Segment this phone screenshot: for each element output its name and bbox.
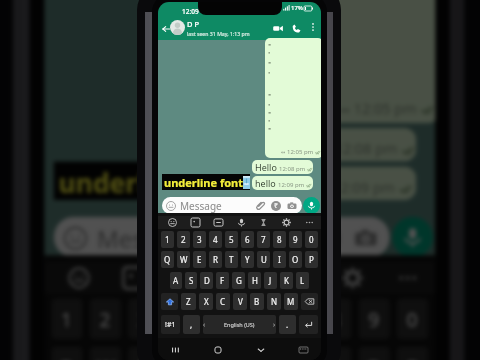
button[interactable]: 1 xyxy=(161,231,174,248)
button[interactable]: U xyxy=(257,251,270,268)
button[interactable]: 2 xyxy=(90,298,121,339)
button[interactable]: Voice message xyxy=(392,217,433,258)
button[interactable]: Video call xyxy=(271,21,285,35)
button[interactable]: . xyxy=(279,315,296,334)
button[interactable]: Message xyxy=(54,217,390,258)
button[interactable]: U xyxy=(282,346,313,360)
button[interactable]: 1 xyxy=(51,298,83,339)
button[interactable]: H xyxy=(248,272,261,289)
button[interactable]: 2 xyxy=(177,231,190,248)
button[interactable]: F xyxy=(216,272,229,289)
staticText: 2 xyxy=(181,234,186,245)
button[interactable]: Voice input xyxy=(233,216,249,229)
button[interactable]: Stickers xyxy=(114,262,152,294)
button[interactable]: C xyxy=(216,293,230,310)
button[interactable]: Z xyxy=(181,293,196,310)
button[interactable]: GIF xyxy=(169,262,207,294)
button[interactable]: Back xyxy=(253,342,269,358)
button[interactable]: underline font xyxy=(162,174,250,190)
button[interactable]: 7 xyxy=(282,298,313,339)
button[interactable]: 7 xyxy=(257,231,270,248)
button[interactable]: Emoji xyxy=(164,216,180,229)
button[interactable]: , xyxy=(183,315,200,334)
button[interactable]: Y xyxy=(241,251,254,268)
button[interactable]: D xyxy=(200,272,213,289)
button[interactable]: hello xyxy=(252,176,313,190)
button[interactable]: Emoji xyxy=(59,262,97,294)
button[interactable]: 9 xyxy=(359,298,390,339)
button[interactable]: 6 xyxy=(241,231,254,248)
button[interactable]: Keyboard xyxy=(295,342,311,358)
button[interactable]: underline font xyxy=(54,162,265,200)
button[interactable]: L xyxy=(296,272,309,289)
button[interactable]: 6 xyxy=(243,298,275,339)
button[interactable]: More xyxy=(301,216,317,229)
button[interactable]: 4 xyxy=(209,231,222,248)
button[interactable]: Y xyxy=(243,346,275,360)
button[interactable]: 8 xyxy=(273,231,286,248)
button[interactable]: E xyxy=(193,251,206,268)
button[interactable]: Stickers xyxy=(187,216,203,229)
button[interactable]: I xyxy=(320,346,351,360)
staticText: 8 xyxy=(330,306,342,332)
button[interactable]: W xyxy=(177,251,190,268)
button[interactable]: X xyxy=(199,293,213,310)
button[interactable]: Clipboard xyxy=(255,216,271,229)
button[interactable]: M xyxy=(284,293,298,310)
button[interactable]: B xyxy=(250,293,264,310)
button[interactable]: 5 xyxy=(205,298,236,339)
button[interactable]: 0 xyxy=(305,231,318,248)
button[interactable]: T xyxy=(205,346,236,360)
button[interactable]: Message xyxy=(162,197,302,214)
button[interactable]: Settings xyxy=(278,216,294,229)
button[interactable]: Hello xyxy=(252,160,313,174)
button[interactable]: GIF xyxy=(210,216,226,229)
button[interactable]: A xyxy=(170,272,182,289)
button[interactable]: Q xyxy=(161,251,174,268)
staticText: 12:08 pm xyxy=(335,140,399,159)
button[interactable]: Shift xyxy=(161,293,178,310)
button[interactable]: R xyxy=(209,251,222,268)
button[interactable]: !#1 xyxy=(161,315,180,334)
button[interactable]: Backspace xyxy=(301,293,318,310)
button[interactable]: R xyxy=(167,346,198,360)
button[interactable]: Enter xyxy=(299,315,318,334)
button[interactable]: J xyxy=(264,272,277,289)
button[interactable]: 3 xyxy=(193,231,206,248)
button[interactable]: More xyxy=(387,262,426,294)
button[interactable]: Voice input xyxy=(224,262,263,294)
button[interactable]: Hello xyxy=(270,128,416,162)
button[interactable]: 9 xyxy=(289,231,302,248)
button[interactable]: 0 xyxy=(397,298,428,339)
button[interactable]: 8 xyxy=(320,298,351,339)
button[interactable]: 5 xyxy=(225,231,238,248)
staticText: L xyxy=(300,275,305,286)
staticText: Hello xyxy=(277,130,330,159)
button[interactable]: I xyxy=(273,251,286,268)
button[interactable]: V xyxy=(233,293,247,310)
button[interactable]: ‹ xyxy=(203,315,276,334)
button[interactable]: P xyxy=(305,251,318,268)
button[interactable]: More options xyxy=(307,21,318,32)
button[interactable]: Recents xyxy=(168,342,184,358)
button[interactable]: Voice message xyxy=(303,197,320,214)
button[interactable]: N xyxy=(267,293,281,310)
button[interactable]: T xyxy=(225,251,238,268)
button[interactable]: Home xyxy=(210,342,226,358)
button[interactable]: Call xyxy=(289,21,303,35)
button[interactable]: hello xyxy=(270,166,416,200)
button[interactable]: G xyxy=(232,272,245,289)
button[interactable]: S xyxy=(185,272,197,289)
button[interactable]: 4 xyxy=(167,298,198,339)
button[interactable]: 3 xyxy=(128,298,159,339)
button[interactable]: Clipboard xyxy=(277,262,315,294)
button[interactable]: O xyxy=(289,251,302,268)
button[interactable]: K xyxy=(280,272,293,289)
button[interactable]: Settings xyxy=(332,262,371,294)
button[interactable]: Back xyxy=(159,22,172,35)
